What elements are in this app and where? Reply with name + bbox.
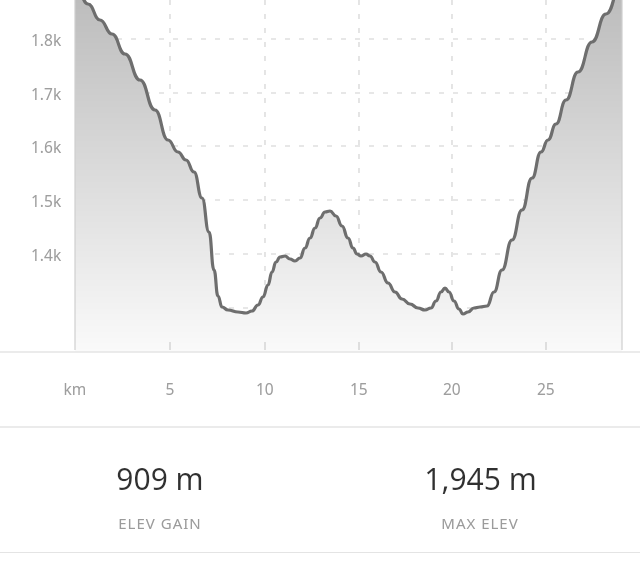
staticText: ELEV GAIN (118, 513, 202, 533)
button[interactable]: 1,945 m (320, 428, 640, 552)
staticText: 909 m (116, 458, 204, 499)
button[interactable]: Elevation profile chart (0, 0, 640, 352)
staticText: 1,945 m (424, 458, 537, 499)
staticText: MAX ELEV (441, 513, 519, 533)
button[interactable]: 909 m (0, 428, 320, 552)
